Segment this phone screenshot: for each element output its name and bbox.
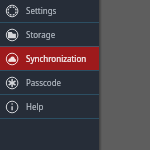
button[interactable]: Close navigation drawer — [99, 0, 150, 150]
button[interactable]: Passcode — [0, 71, 99, 94]
button[interactable]: Settings — [0, 0, 99, 22]
button[interactable]: Synchronization — [0, 47, 99, 70]
button[interactable]: Help — [0, 95, 99, 118]
button[interactable]: Storage — [0, 23, 99, 46]
staticText: Synchronization — [26, 53, 87, 64]
staticText: Passcode — [26, 77, 62, 88]
staticText: Storage — [26, 29, 56, 40]
staticText: Settings — [26, 5, 57, 16]
staticText: Help — [26, 101, 44, 112]
